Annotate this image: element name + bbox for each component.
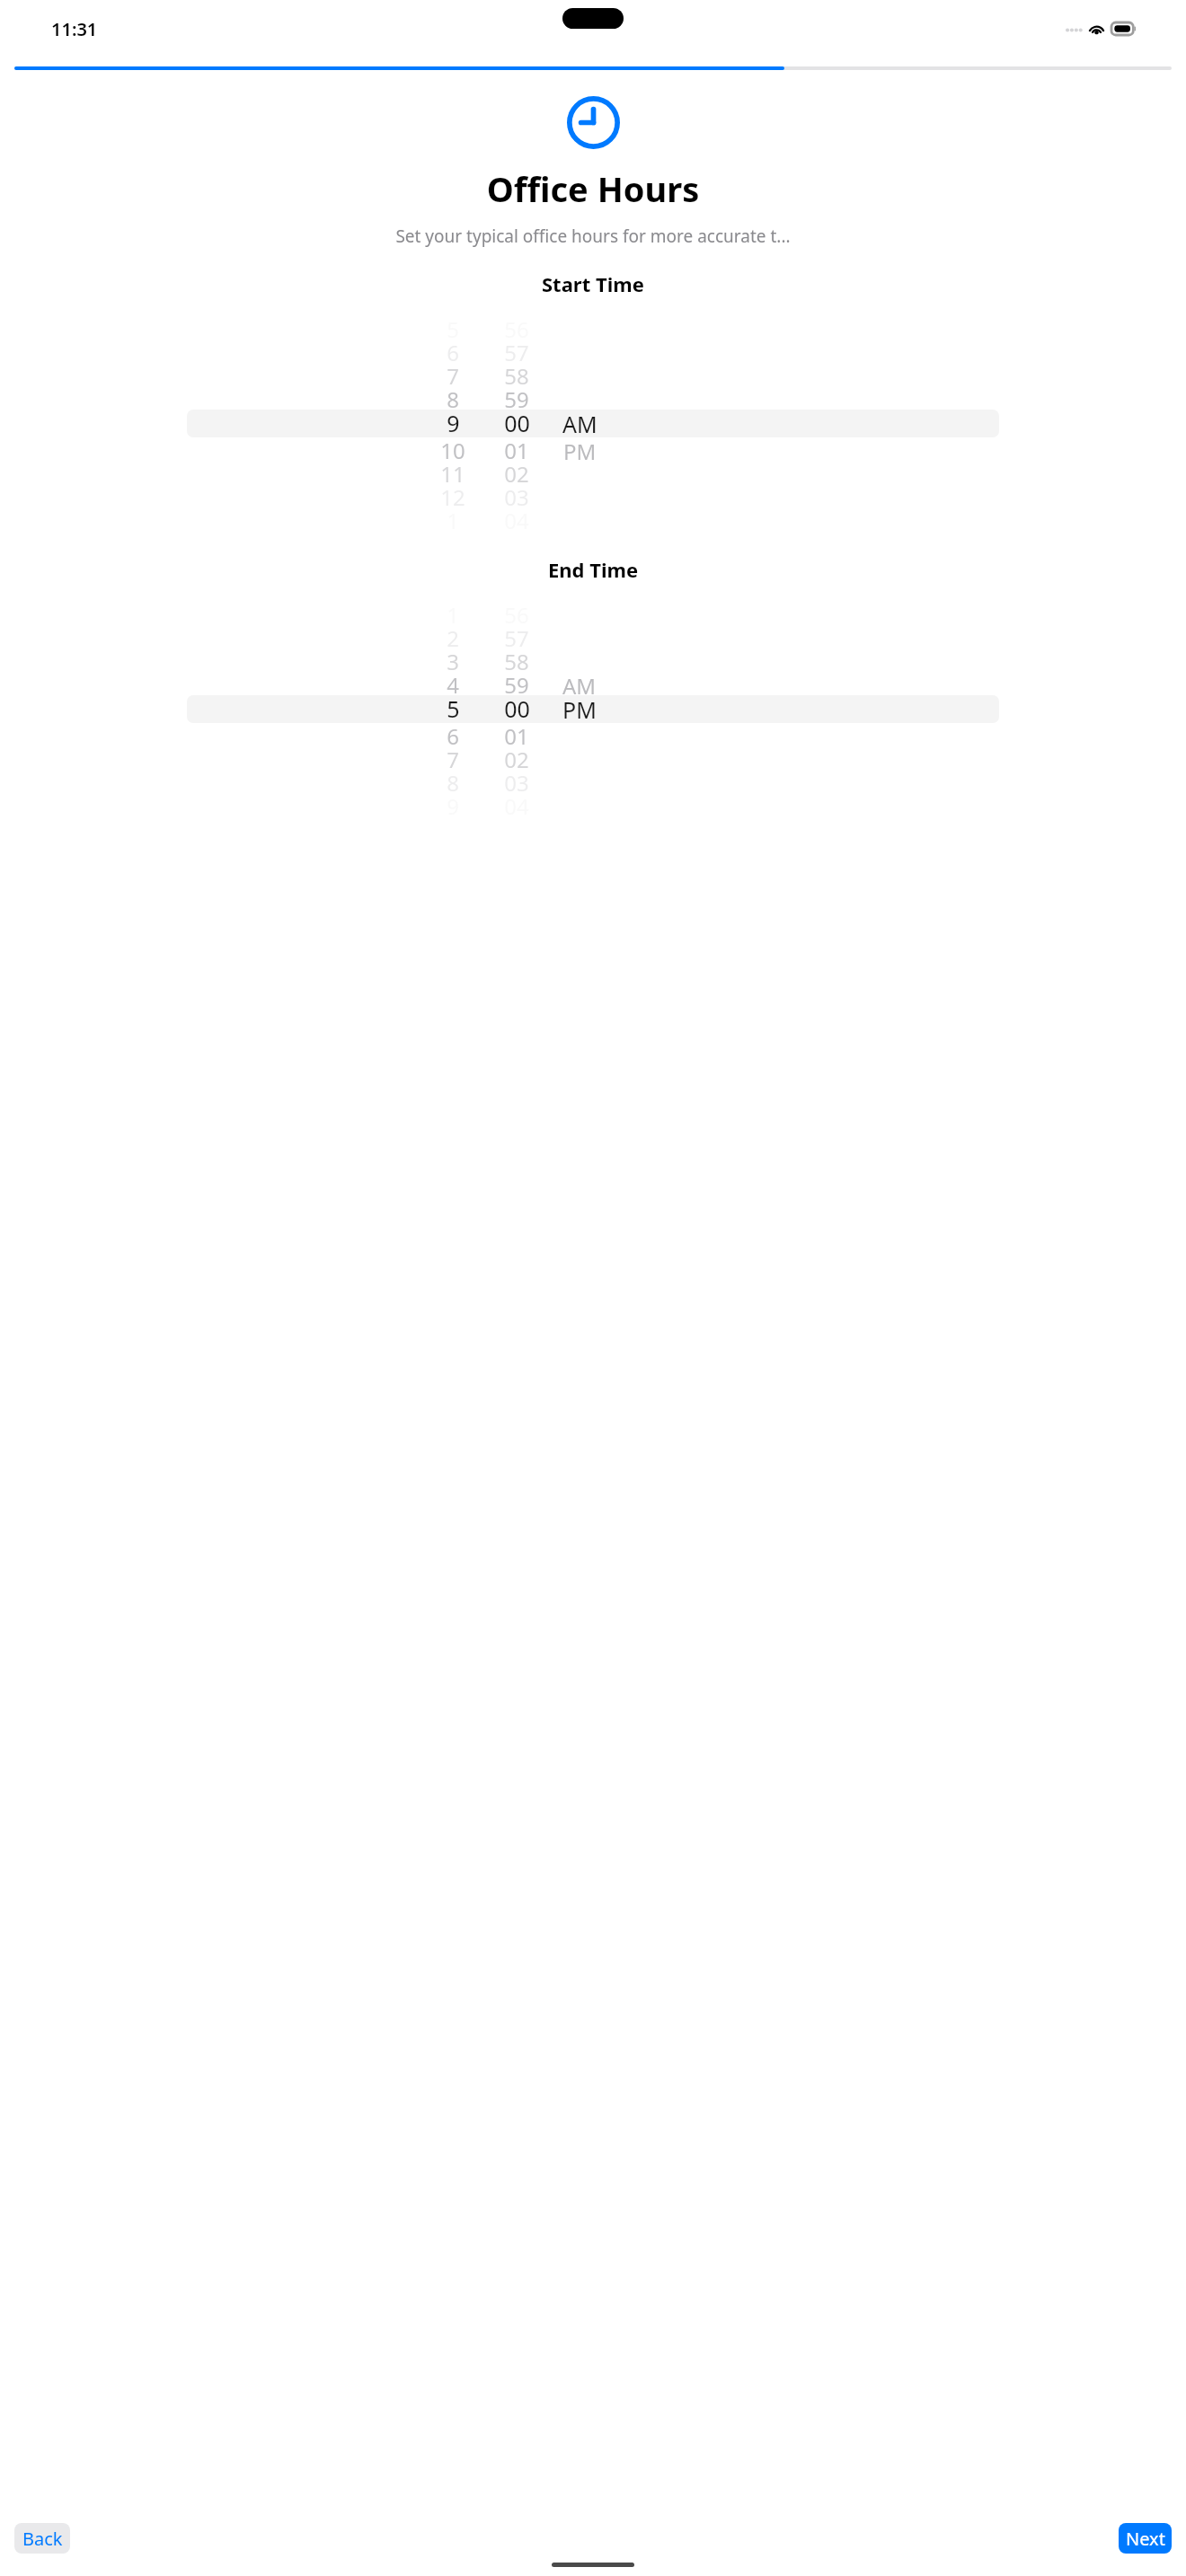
staticText: Set your typical office hours for more a… (13, 225, 1173, 248)
staticText: 01 (504, 436, 529, 459)
staticText: 00 (504, 693, 530, 721)
staticText: PM (563, 437, 597, 460)
staticText: 11 (440, 459, 465, 482)
staticText: End Time (548, 556, 639, 583)
staticText: 03 (504, 482, 529, 506)
staticText: 03 (504, 768, 529, 791)
staticText: 02 (504, 459, 529, 482)
staticText: 7 (447, 361, 459, 384)
button[interactable]: Next (1119, 2523, 1172, 2554)
staticText: 00 (504, 408, 530, 436)
staticText: 9 (447, 408, 460, 436)
staticText: 5 (447, 693, 460, 721)
staticText: 6 (447, 338, 459, 361)
staticText: 2 (447, 623, 459, 647)
staticText: Start Time (542, 270, 644, 297)
staticText: 4 (447, 670, 459, 693)
staticText: PM (562, 694, 597, 722)
staticText: 58 (504, 647, 529, 670)
staticText: 11:31 (51, 17, 98, 41)
staticText: 12 (440, 482, 465, 506)
staticText: 8 (447, 384, 459, 408)
staticText: 01 (504, 721, 529, 745)
staticText: 59 (504, 384, 529, 408)
staticText: AM (562, 671, 597, 694)
staticText: 7 (447, 745, 459, 768)
staticText: 8 (447, 768, 459, 791)
staticText: 58 (504, 361, 529, 384)
staticText: Next (1126, 2527, 1165, 2551)
staticText: 59 (504, 670, 529, 693)
staticText: AM (562, 409, 597, 437)
staticText: 10 (440, 436, 465, 459)
button[interactable]: 5 (0, 314, 1186, 532)
staticText: 57 (504, 623, 529, 647)
staticText: Office Hours (0, 165, 1186, 212)
button[interactable]: 1 (0, 600, 1186, 817)
staticText: 6 (447, 721, 459, 745)
staticText: 57 (504, 338, 529, 361)
staticText: Back (22, 2527, 63, 2551)
button[interactable]: Back (14, 2523, 70, 2554)
staticText: 3 (447, 647, 459, 670)
staticText: 02 (504, 745, 529, 768)
